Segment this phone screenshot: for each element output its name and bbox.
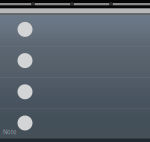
button[interactable]	[0, 15, 150, 46]
staticText: Note	[3, 128, 16, 136]
button[interactable]	[0, 77, 150, 109]
button[interactable]: Note	[0, 109, 150, 140]
button[interactable]	[0, 46, 150, 77]
